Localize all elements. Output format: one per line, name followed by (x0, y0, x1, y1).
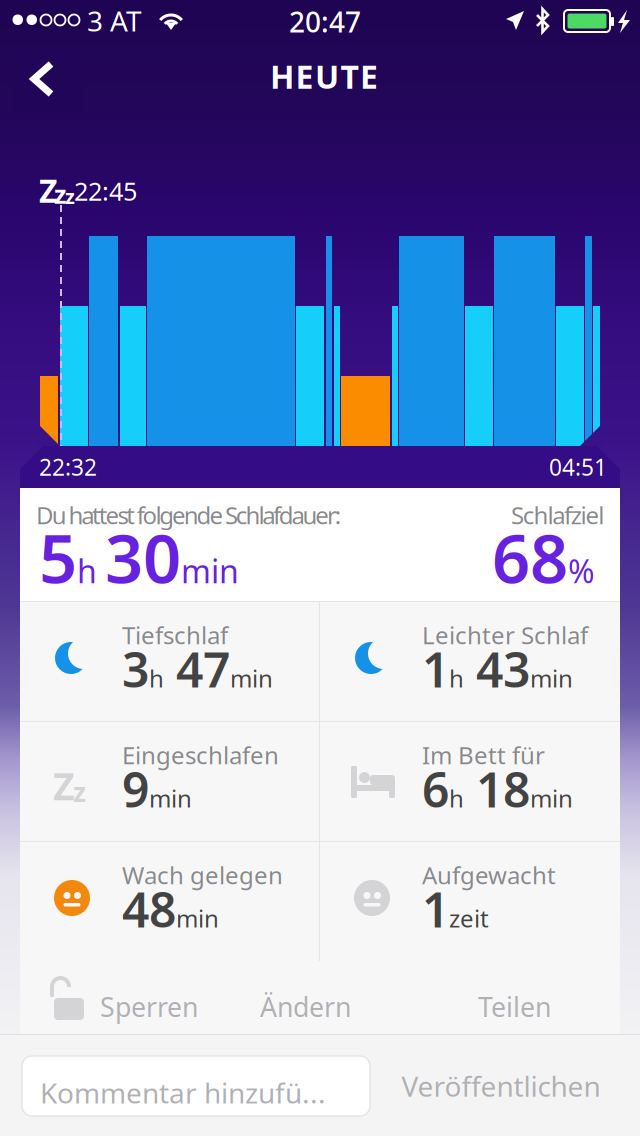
button[interactable]: Ändern (240, 961, 410, 1034)
staticText: 30 (105, 513, 181, 601)
staticText: 20:47 (289, 3, 361, 40)
staticText: 6 (422, 757, 449, 821)
staticText: Eingeschlafen (122, 739, 279, 771)
staticText: Aufgewacht (422, 859, 556, 891)
staticText: z (65, 183, 75, 210)
button[interactable]: Back (12, 48, 84, 112)
staticText: min (176, 902, 219, 934)
staticText: 22:32 (39, 452, 97, 482)
button[interactable]: Teilen (440, 961, 610, 1034)
staticText: Ändern (260, 989, 351, 1024)
staticText: min (149, 782, 192, 814)
staticText: z (54, 177, 66, 211)
staticText: Schlafziel (511, 499, 604, 531)
staticText: Kommentar hinzufü... (40, 1074, 326, 1111)
staticText: h (449, 662, 464, 694)
staticText: Z (53, 761, 75, 811)
staticText: Wach gelegen (122, 859, 283, 891)
staticText: h (77, 549, 105, 592)
button[interactable]: Kommentar hinzufü... (22, 1056, 370, 1116)
staticText: 48 (122, 877, 176, 941)
staticText: Teilen (478, 989, 551, 1024)
staticText: Tiefschlaf (122, 619, 228, 651)
staticText: zeit (449, 902, 489, 934)
staticText: Z (39, 169, 58, 211)
staticText: 9 (122, 757, 149, 821)
staticText: 68 (492, 513, 568, 601)
staticText: Leichter Schlaf (422, 619, 588, 651)
staticText: Veröffentlichen (401, 1067, 600, 1105)
staticText: 3 AT (87, 2, 142, 39)
staticText: min (530, 662, 573, 694)
staticText: 1 (422, 877, 449, 941)
staticText: h (449, 782, 464, 814)
staticText: 1 (422, 637, 449, 701)
staticText: Du hattest folgende Schlafdauer: (36, 499, 341, 531)
staticText: min (230, 662, 273, 694)
staticText: min (181, 549, 239, 592)
staticText: HEUTE (270, 55, 378, 97)
staticText: z (73, 774, 86, 809)
staticText: 43 (464, 637, 530, 701)
staticText: 18 (464, 757, 530, 821)
staticText: 3 (122, 637, 149, 701)
staticText: 04:51 (549, 452, 607, 482)
staticText: 5 (39, 513, 77, 601)
staticText: 47 (164, 637, 230, 701)
button[interactable]: Veröffentlichen (376, 1056, 626, 1116)
button[interactable]: Sperren (20, 961, 220, 1034)
staticText: min (530, 782, 573, 814)
staticText: Im Bett für (422, 739, 545, 771)
staticText: % (568, 549, 595, 592)
staticText: 22:45 (74, 174, 137, 208)
staticText: h (149, 662, 164, 694)
staticText: Sperren (100, 989, 198, 1024)
